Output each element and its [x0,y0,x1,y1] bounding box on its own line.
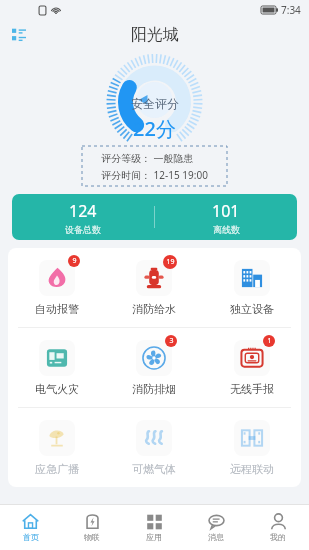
staticText: 无线手报 [230,382,274,396]
staticText: 可燃气体 [132,462,176,476]
staticText: 我的 [270,532,286,542]
staticText: 7:34 [281,3,301,17]
button[interactable]: 101 [155,194,297,240]
button[interactable]: 9 [8,248,105,327]
staticText: 应急广播 [35,462,79,476]
button[interactable]: 1 [203,328,301,407]
button[interactable]: 物联 [61,505,123,550]
button[interactable]: 应用 [123,505,185,550]
button[interactable]: Menu [8,24,30,46]
staticText: 19 [166,257,175,267]
button[interactable]: 19 [105,248,203,327]
staticText: 22分 [133,115,176,142]
staticText: 9 [72,256,77,266]
staticText: 首页 [23,532,39,542]
button[interactable]: 3 [105,328,203,407]
staticText: 消防给水 [132,302,176,316]
button[interactable]: 消息 [185,505,247,550]
staticText: 评分时间： 12-15 19:00 [101,168,208,182]
staticText: 独立设备 [230,302,274,316]
button[interactable]: 电气火灾 [8,328,105,407]
button[interactable]: 独立设备 [203,248,301,327]
staticText: 电气火灾 [35,382,79,396]
staticText: 评分等级： 一般隐患 [101,151,194,165]
staticText: 设备总数 [65,224,101,235]
staticText: 离线数 [213,224,240,235]
button[interactable]: 124 [12,194,154,240]
staticText: 3 [169,336,174,346]
staticText: 阳光城 [131,25,179,45]
staticText: 物联 [84,532,100,542]
staticText: 1 [267,336,272,346]
staticText: 远程联动 [230,462,274,476]
button[interactable]: 我的 [247,505,309,550]
staticText: 消息 [208,532,224,542]
button[interactable]: 首页 [0,505,61,550]
button[interactable]: 应急广播 [8,408,105,487]
staticText: 124 [69,200,97,222]
staticText: 应用 [146,532,162,542]
button[interactable]: 远程联动 [203,408,301,487]
staticText: 自动报警 [35,302,79,316]
staticText: 安全评分 [131,96,179,111]
staticText: 消防排烟 [132,382,176,396]
staticText: 101 [212,200,240,222]
button[interactable]: 可燃气体 [105,408,203,487]
